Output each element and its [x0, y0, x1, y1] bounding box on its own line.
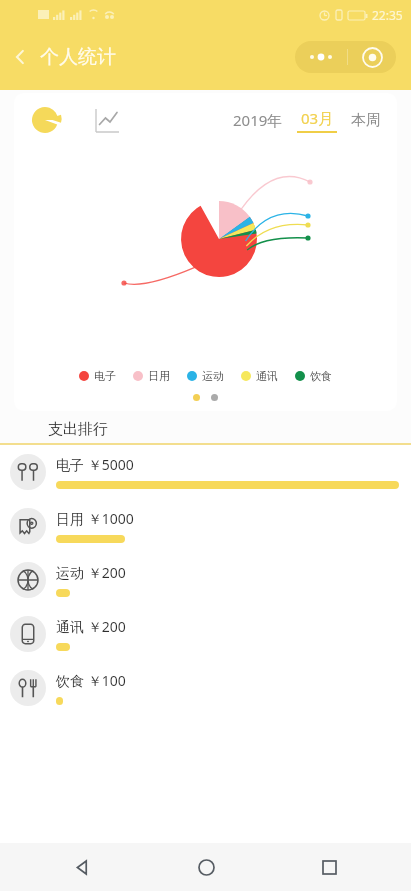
button[interactable]: 日用 ￥1000: [0, 499, 411, 553]
staticText: 通讯: [256, 369, 278, 383]
button[interactable]: Recents: [307, 845, 351, 889]
button[interactable]: 运动 ￥200: [0, 553, 411, 607]
staticText: 个人统计: [40, 45, 116, 69]
button[interactable]: Home: [184, 845, 228, 889]
button[interactable]: 03月: [297, 108, 337, 133]
button[interactable]: 本周: [351, 111, 381, 130]
staticText: 支出排行: [48, 420, 108, 439]
other: More: [295, 41, 347, 73]
staticText: 运动: [202, 369, 224, 383]
staticText: 03月: [301, 108, 334, 128]
button[interactable]: 电子 ￥5000: [0, 445, 411, 499]
button[interactable]: Back: [0, 37, 40, 77]
button[interactable]: Pie chart: [30, 105, 60, 135]
staticText: 22:35: [372, 7, 403, 23]
staticText: 日用: [148, 369, 170, 383]
button[interactable]: 通讯 ￥200: [0, 607, 411, 661]
button[interactable]: More: [295, 41, 396, 73]
staticText: 日用 ￥1000: [56, 509, 134, 528]
other: Record: [348, 41, 396, 73]
button[interactable]: Line chart: [92, 105, 122, 135]
staticText: 运动 ￥200: [56, 563, 126, 582]
button[interactable]: Back: [60, 845, 104, 889]
staticText: 电子 ￥5000: [56, 455, 134, 474]
button[interactable]: 饮食 ￥100: [0, 661, 411, 715]
staticText: 电子: [94, 369, 116, 383]
staticText: 饮食: [310, 369, 332, 383]
staticText: 饮食 ￥100: [56, 671, 126, 690]
staticText: 通讯 ￥200: [56, 617, 126, 636]
button[interactable]: 2019年: [233, 110, 283, 130]
